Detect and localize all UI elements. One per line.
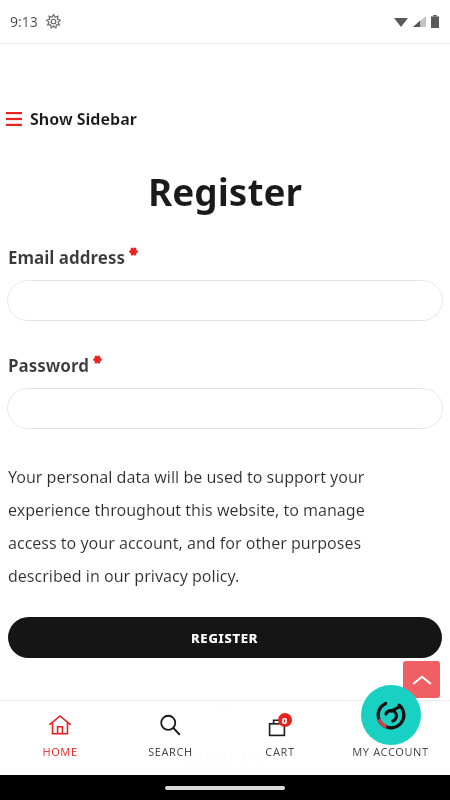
staticText: SEARCH xyxy=(148,744,193,759)
staticText: Your personal data will be used to suppo… xyxy=(8,466,365,488)
staticText: Password xyxy=(8,354,89,377)
button[interactable]: Scroll to top xyxy=(403,661,440,698)
staticText: REGISTER xyxy=(191,629,259,647)
button[interactable]: MY ACCOUNT xyxy=(340,701,440,765)
staticText: CART xyxy=(265,744,295,759)
button[interactable]: Show Sidebar xyxy=(0,102,151,136)
staticText: access to your account, and for other pu… xyxy=(8,532,362,554)
staticText: MY ACCOUNT xyxy=(352,744,429,759)
button[interactable]: HOME xyxy=(10,701,110,765)
button[interactable]: 0 xyxy=(230,701,330,765)
staticText: or xyxy=(216,691,234,714)
staticText: 9:13 xyxy=(10,12,38,31)
staticText: Register xyxy=(148,166,303,216)
staticText: described in our privacy policy. xyxy=(8,565,240,587)
staticText: 0 xyxy=(282,714,288,726)
button[interactable]: Support chat xyxy=(361,685,421,745)
staticText: HOME xyxy=(42,744,78,759)
staticText: SIGN IN xyxy=(186,746,265,772)
button[interactable] xyxy=(7,280,443,321)
staticText: Show Sidebar xyxy=(30,108,137,130)
button[interactable]: SEARCH xyxy=(120,701,220,765)
staticText: Email address xyxy=(8,246,125,269)
button[interactable]: REGISTER xyxy=(8,617,442,658)
staticText: experience throughout this website, to m… xyxy=(8,499,365,521)
button[interactable] xyxy=(7,388,443,429)
